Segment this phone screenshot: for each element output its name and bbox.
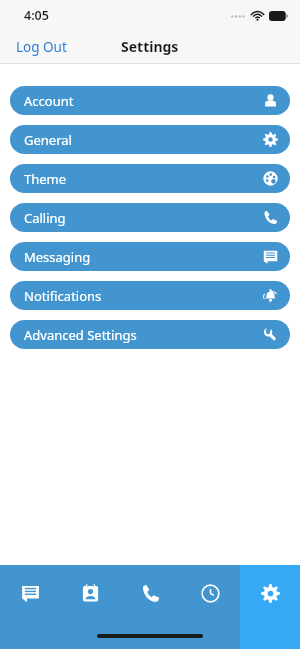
button[interactable]: Messaging — [10, 242, 290, 271]
button[interactable]: Recents — [180, 565, 240, 649]
button[interactable]: Log Out — [0, 32, 83, 62]
button[interactable]: Messages — [0, 565, 60, 649]
button[interactable]: Advanced Settings — [10, 320, 290, 349]
staticText: Calling — [24, 209, 66, 227]
button[interactable]: Theme — [10, 164, 290, 193]
button[interactable]: Account — [10, 86, 290, 115]
staticText: 4:05 — [24, 7, 49, 24]
staticText: General — [24, 131, 72, 149]
staticText: Advanced Settings — [24, 326, 137, 344]
button[interactable]: Calling — [10, 203, 290, 232]
staticText: Messaging — [24, 248, 91, 266]
staticText: Log Out — [16, 38, 67, 56]
staticText: Settings — [121, 37, 179, 56]
button[interactable]: Settings — [240, 565, 300, 649]
button[interactable]: Notifications — [10, 281, 290, 310]
staticText: Account — [24, 92, 74, 110]
staticText: Theme — [24, 170, 67, 188]
button[interactable]: Phone — [120, 565, 180, 649]
staticText: Notifications — [24, 287, 102, 305]
button[interactable]: General — [10, 125, 290, 154]
button[interactable]: Contacts — [60, 565, 120, 649]
